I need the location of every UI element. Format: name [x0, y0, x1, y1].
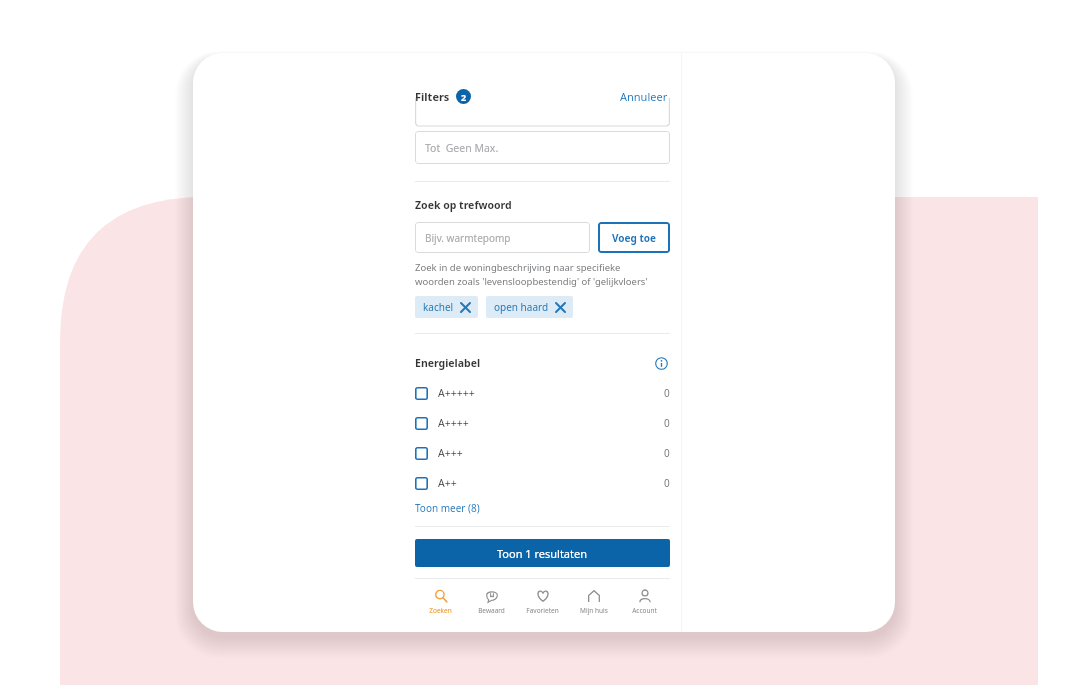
button[interactable]: Bijv. warmtepomp	[415, 222, 590, 253]
staticText: Zoek op trefwoord	[415, 198, 512, 212]
staticText: A+++++	[438, 386, 475, 400]
button[interactable]: open haard	[486, 296, 573, 318]
staticText: Toon meer (8)	[415, 501, 480, 515]
button[interactable]: kachel	[415, 296, 478, 318]
staticText: Mijn huis	[580, 606, 608, 615]
button[interactable]: Favorieten	[517, 587, 568, 617]
staticText: Favorieten	[526, 606, 559, 615]
button[interactable]: Tot Geen Max.	[415, 131, 670, 164]
button[interactable]: Meer informatie	[652, 354, 670, 372]
staticText: kachel	[423, 300, 454, 314]
staticText: Bewaard	[478, 606, 505, 615]
button[interactable]: Account	[619, 587, 670, 617]
staticText: 0	[664, 386, 670, 400]
button[interactable]: Toon meer (8)	[415, 500, 480, 516]
button[interactable]: A++	[415, 468, 670, 498]
staticText: Zoeken	[429, 606, 452, 615]
staticText: 0	[664, 416, 670, 430]
staticText: open haard	[494, 300, 549, 314]
button[interactable]	[415, 118, 670, 126]
staticText: A+++	[438, 446, 463, 460]
button[interactable]: Voeg toe	[598, 222, 670, 253]
button[interactable]: A++++	[415, 408, 670, 438]
staticText: Filters	[415, 89, 450, 104]
staticText: Voeg toe	[612, 231, 656, 245]
staticText: 0	[664, 446, 670, 460]
staticText: Toon 1 resultaten	[497, 546, 588, 561]
staticText: Energielabel	[415, 356, 481, 370]
button[interactable]: A+++	[415, 438, 670, 468]
staticText: Tot Geen Max.	[425, 141, 499, 155]
staticText: A++	[438, 476, 457, 490]
staticText: Annuleer	[620, 89, 668, 104]
button[interactable]: Annuleer	[618, 87, 670, 106]
button[interactable]: A+++++	[415, 378, 670, 408]
staticText: Account	[632, 606, 657, 615]
staticText: Bijv. warmtepomp	[425, 231, 511, 245]
staticText: 2	[461, 91, 467, 103]
button[interactable]: Toon 1 resultaten	[415, 539, 670, 567]
staticText: 0	[664, 476, 670, 490]
staticText: A++++	[438, 416, 469, 430]
button[interactable]: Bewaard	[466, 587, 517, 617]
button[interactable]: Zoeken	[415, 587, 466, 617]
button[interactable]: Mijn huis	[568, 587, 619, 617]
staticText: Zoek in de woningbeschrijving naar speci…	[415, 261, 648, 287]
